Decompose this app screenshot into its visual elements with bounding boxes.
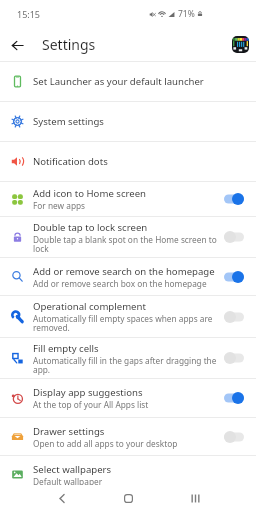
- button[interactable]: Select wallpapers: [0, 456, 256, 494]
- staticText: Display app suggestions: [33, 386, 143, 399]
- staticText: Automatically fill empty spaces when app…: [33, 313, 217, 333]
- staticText: Notification dots: [33, 155, 108, 168]
- button[interactable]: Switch on: [221, 191, 247, 207]
- staticText: 71%: [178, 8, 195, 20]
- button[interactable]: Home: [117, 487, 139, 509]
- staticText: Set Launcher as your default launcher: [33, 75, 204, 88]
- staticText: Settings: [42, 35, 96, 54]
- button[interactable]: System settings: [0, 102, 256, 142]
- staticText: Add or remove search box on the homepage: [33, 278, 207, 289]
- staticText: Double tap a blank spot on the Home scre…: [33, 234, 217, 254]
- staticText: Automatically fill in the gaps after dra…: [33, 355, 217, 375]
- button[interactable]: Notification dots: [0, 142, 256, 182]
- staticText: System settings: [33, 115, 104, 128]
- staticText: Open to add all apps to your desktop: [33, 438, 178, 449]
- button[interactable]: Set Launcher as your default launcher: [0, 62, 256, 102]
- button[interactable]: Drawer settings: [0, 418, 256, 456]
- button[interactable]: Display app suggestions: [0, 379, 256, 418]
- button[interactable]: Switch off: [221, 429, 247, 445]
- button[interactable]: App info: [232, 36, 249, 53]
- button[interactable]: Operational complement: [0, 296, 256, 338]
- button[interactable]: Back: [6, 34, 28, 56]
- button[interactable]: Recent apps: [184, 487, 206, 509]
- button[interactable]: Switch off: [221, 309, 247, 325]
- button[interactable]: Add icon to Home screen: [0, 182, 256, 217]
- staticText: At the top of your All Apps list: [33, 399, 149, 410]
- button[interactable]: Double tap to lock screen: [0, 217, 256, 258]
- button[interactable]: Add or remove search on the homepage: [0, 258, 256, 296]
- staticText: 15:15: [17, 8, 41, 20]
- button[interactable]: Switch on: [221, 269, 247, 285]
- staticText: Add icon to Home screen: [33, 187, 147, 200]
- staticText: Operational complement: [33, 300, 146, 313]
- staticText: Drawer settings: [33, 425, 105, 438]
- button[interactable]: Fill empty cells: [0, 338, 256, 379]
- button[interactable]: Back: [51, 487, 73, 509]
- staticText: Add or remove search on the homepage: [33, 265, 215, 278]
- button[interactable]: Switch on: [221, 390, 247, 406]
- button[interactable]: Switch off: [221, 229, 247, 245]
- staticText: Fill empty cells: [33, 342, 99, 355]
- staticText: Double tap to lock screen: [33, 221, 148, 234]
- staticText: Select wallpapers: [33, 463, 112, 476]
- button[interactable]: Switch off: [221, 350, 247, 366]
- staticText: Default wallpaper: [33, 476, 103, 487]
- staticText: For new apps: [33, 200, 86, 211]
